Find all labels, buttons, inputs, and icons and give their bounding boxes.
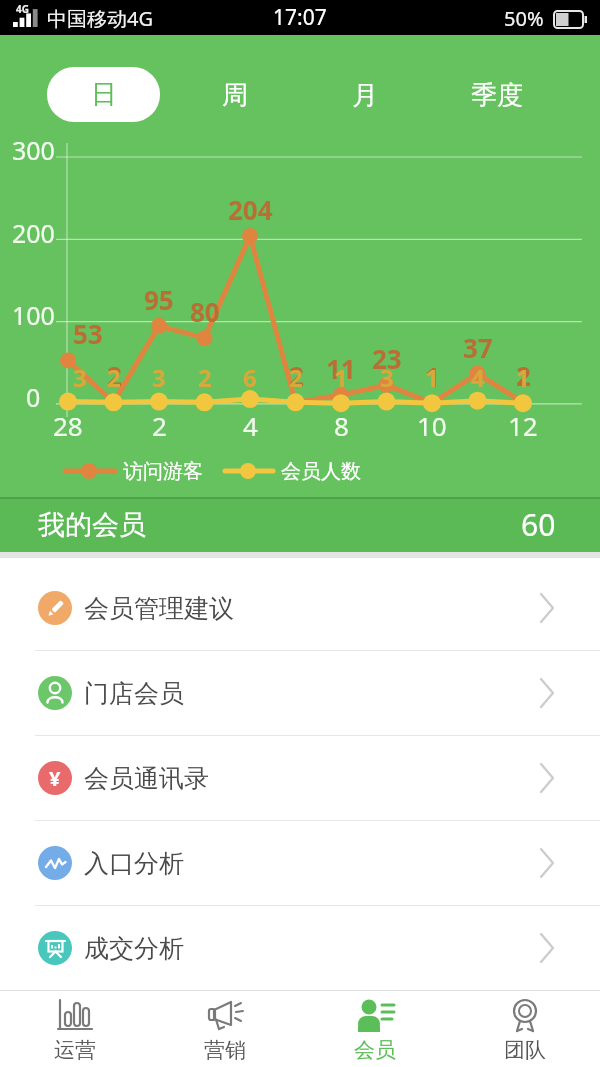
staticText: 4 (243, 408, 258, 442)
staticText: 3 (152, 361, 166, 391)
staticText: 80 (190, 294, 220, 326)
staticText: 团队 (504, 1037, 546, 1063)
staticText: 1 (425, 361, 439, 391)
staticText: 2 (289, 358, 304, 390)
staticText: 6 (243, 361, 257, 391)
staticText: 我的会员 (38, 508, 146, 542)
staticText: 12 (508, 408, 538, 442)
staticText: 1 (516, 361, 530, 391)
staticText: 17:07 (273, 3, 327, 32)
staticText: 23 (372, 341, 402, 373)
staticText: 成交分析 (84, 933, 184, 964)
staticText: 3 (380, 361, 394, 391)
staticText: 运营 (54, 1037, 96, 1063)
staticText: 会员人数 (281, 459, 361, 484)
staticText: 200 (12, 216, 55, 250)
staticText: 10 (417, 408, 447, 442)
staticText: 会员通讯录 (84, 763, 209, 794)
staticText: 2 (152, 408, 167, 442)
staticText: 2 (198, 361, 212, 391)
staticText: 2 (289, 361, 303, 391)
staticText: 11 (326, 351, 356, 383)
staticText: 会员 (354, 1037, 396, 1063)
staticText: 2 (516, 358, 531, 390)
staticText: 季度 (471, 79, 523, 112)
staticText: 1 (334, 361, 348, 391)
staticText: 入口分析 (84, 848, 184, 879)
staticText: 204 (228, 192, 273, 224)
staticText: 37 (463, 330, 493, 362)
staticText: ¥ (49, 765, 61, 792)
staticText: 4G (16, 2, 29, 16)
staticText: 中国移动4G (47, 5, 153, 32)
staticText: 300 (12, 133, 55, 167)
staticText: 53 (73, 316, 103, 348)
staticText: 8 (334, 408, 349, 442)
staticText: 28 (53, 408, 83, 442)
staticText: 100 (12, 298, 55, 332)
staticText: 周 (222, 79, 248, 112)
staticText: 会员管理建议 (84, 593, 234, 624)
staticText: 60 (521, 504, 556, 545)
staticText: 日 (91, 78, 117, 111)
staticText: 0 (26, 380, 41, 414)
staticText: 2 (107, 361, 121, 391)
staticText: 访问游客 (123, 459, 203, 484)
staticText: 95 (144, 282, 174, 314)
staticText: 营销 (204, 1037, 246, 1063)
staticText: 3 (73, 361, 87, 391)
staticText: 4 (471, 361, 485, 391)
staticText: 2 (107, 358, 122, 390)
staticText: 月 (352, 79, 378, 112)
staticText: 门店会员 (84, 678, 184, 709)
staticText: 50% (504, 5, 544, 32)
staticText: 1 (425, 359, 440, 391)
